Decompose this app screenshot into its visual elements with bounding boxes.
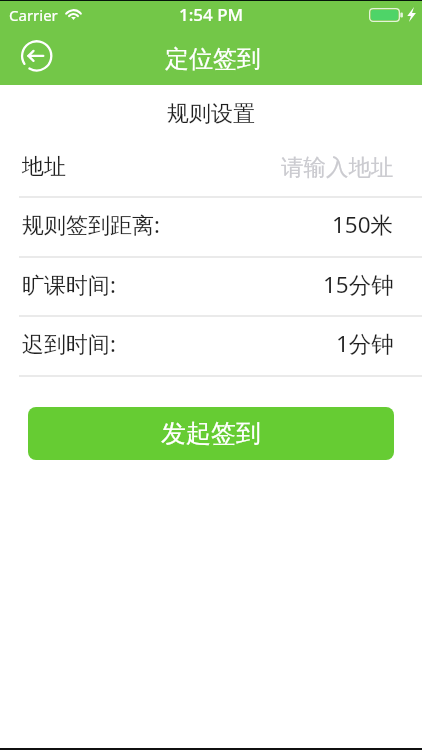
- button[interactable]: [0, 138, 422, 198]
- staticText: 150米: [332, 209, 394, 240]
- button[interactable]: 发起签到: [28, 407, 394, 460]
- staticText: Carrier: [9, 5, 58, 25]
- staticText: 1:54 PM: [179, 3, 244, 26]
- staticText: 旷课时间:: [22, 269, 116, 299]
- staticText: 规则设置: [167, 100, 255, 128]
- staticText: 发起签到: [161, 418, 261, 449]
- staticText: 定位签到: [165, 44, 261, 74]
- button[interactable]: Back: [13, 35, 57, 79]
- staticText: 地址: [22, 153, 66, 181]
- button[interactable]: [0, 198, 422, 258]
- staticText: 迟到时间:: [22, 328, 116, 358]
- staticText: 请输入地址: [281, 153, 394, 181]
- button[interactable]: [0, 317, 422, 377]
- staticText: 1分钟: [336, 328, 394, 359]
- button[interactable]: [0, 257, 422, 317]
- staticText: 15分钟: [323, 269, 394, 300]
- staticText: 规则签到距离:: [22, 209, 160, 239]
